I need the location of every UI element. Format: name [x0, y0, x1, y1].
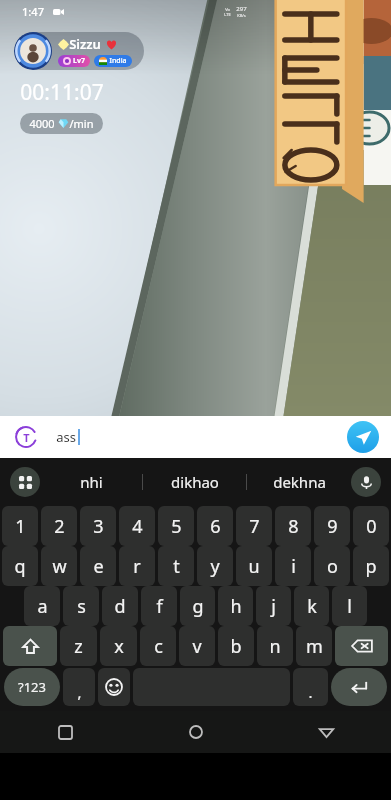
- button[interactable]: w: [41, 546, 77, 586]
- button[interactable]: u: [236, 546, 272, 586]
- staticText: e: [93, 554, 104, 579]
- staticText: c: [154, 634, 163, 659]
- staticText: dikhao: [171, 472, 219, 492]
- button[interactable]: Enter: [331, 668, 387, 706]
- button[interactable]: 9: [314, 506, 350, 546]
- staticText: 8: [288, 514, 299, 539]
- staticText: .: [308, 682, 313, 702]
- staticText: 5: [171, 514, 182, 539]
- button[interactable]: c: [140, 626, 176, 666]
- button[interactable]: h: [218, 586, 253, 626]
- staticText: 00:11:07: [20, 78, 104, 107]
- staticText: nhi: [80, 472, 103, 492]
- button[interactable]: 3: [80, 506, 116, 546]
- button[interactable]: 0: [353, 506, 389, 546]
- staticText: k: [307, 594, 317, 619]
- button[interactable]: 8: [275, 506, 311, 546]
- staticText: 9: [327, 514, 338, 539]
- staticText: m: [306, 634, 323, 659]
- button[interactable]: Send: [347, 421, 379, 453]
- staticText: /min: [69, 116, 94, 131]
- button[interactable]: o: [314, 546, 350, 586]
- button[interactable]: ?123: [4, 668, 60, 706]
- button[interactable]: Emoji: [98, 668, 130, 706]
- button[interactable]: .: [293, 668, 328, 706]
- button[interactable]: n: [257, 626, 293, 666]
- staticText: T: [23, 430, 30, 445]
- button[interactable]: x: [100, 626, 137, 666]
- button[interactable]: v: [179, 626, 215, 666]
- button[interactable]: d: [102, 586, 138, 626]
- staticText: f: [156, 594, 163, 619]
- button[interactable]: Sizzu: [14, 32, 144, 70]
- staticText: Vo: [225, 7, 230, 12]
- button[interactable]: j: [256, 586, 291, 626]
- button[interactable]: Keyboard menu: [10, 467, 40, 497]
- button[interactable]: e: [80, 546, 116, 586]
- button[interactable]: t: [158, 546, 194, 586]
- staticText: j: [271, 594, 276, 619]
- staticText: India: [109, 56, 127, 66]
- staticText: Sizzu: [69, 35, 101, 53]
- staticText: q: [14, 554, 26, 579]
- button[interactable]: Recents: [0, 711, 131, 753]
- staticText: 7: [249, 514, 260, 539]
- button[interactable]: ,: [63, 668, 95, 706]
- button[interactable]: i: [275, 546, 311, 586]
- staticText: Lv7: [73, 56, 85, 66]
- staticText: g: [192, 594, 204, 619]
- button[interactable]: Back: [261, 711, 391, 753]
- staticText: 6: [210, 514, 221, 539]
- staticText: r: [133, 554, 141, 579]
- button[interactable]: 5: [158, 506, 194, 546]
- staticText: h: [230, 594, 242, 619]
- button[interactable]: f: [141, 586, 177, 626]
- staticText: w: [52, 554, 67, 579]
- button[interactable]: 7: [236, 506, 272, 546]
- button[interactable]: nhi: [40, 458, 143, 506]
- button[interactable]: 2: [41, 506, 77, 546]
- staticText: 297: [236, 5, 247, 13]
- staticText: KB/s: [237, 13, 246, 18]
- button[interactable]: 6: [197, 506, 233, 546]
- button[interactable]: 1: [2, 506, 38, 546]
- button[interactable]: dekhna: [247, 458, 351, 506]
- staticText: 1:47: [22, 4, 44, 19]
- button[interactable]: Home: [131, 711, 261, 753]
- button[interactable]: dikhao: [143, 458, 247, 506]
- staticText: u: [248, 554, 260, 579]
- button[interactable]: Voice input: [351, 467, 381, 497]
- button[interactable]: s: [63, 586, 99, 626]
- button[interactable]: z: [60, 626, 97, 666]
- button[interactable]: l: [332, 586, 367, 626]
- staticText: dekhna: [273, 472, 326, 492]
- button[interactable]: q: [2, 546, 38, 586]
- button[interactable]: b: [218, 626, 254, 666]
- button[interactable]: y: [197, 546, 233, 586]
- staticText: 1: [15, 514, 26, 539]
- button[interactable]: r: [119, 546, 155, 586]
- staticText: LTE: [224, 12, 231, 17]
- button[interactable]: p: [353, 546, 389, 586]
- staticText: p: [365, 554, 377, 579]
- staticText: ?123: [18, 678, 46, 696]
- button[interactable]: k: [294, 586, 329, 626]
- button[interactable]: Translate: [12, 423, 40, 451]
- staticText: 4: [132, 514, 143, 539]
- staticText: 4000: [29, 116, 55, 131]
- staticText: t: [173, 554, 180, 579]
- button[interactable]: 4000: [20, 113, 103, 134]
- staticText: d: [114, 594, 126, 619]
- staticText: y: [210, 554, 220, 579]
- button[interactable]: m: [296, 626, 332, 666]
- button[interactable]: 4: [119, 506, 155, 546]
- button[interactable]: Backspace: [335, 626, 388, 666]
- staticText: 2: [54, 514, 65, 539]
- staticText: a: [37, 594, 48, 619]
- staticText: ass: [56, 428, 76, 446]
- button[interactable]: a: [24, 586, 60, 626]
- button[interactable]: Shift: [3, 626, 57, 666]
- button[interactable]: g: [180, 586, 215, 626]
- staticText: l: [347, 594, 352, 619]
